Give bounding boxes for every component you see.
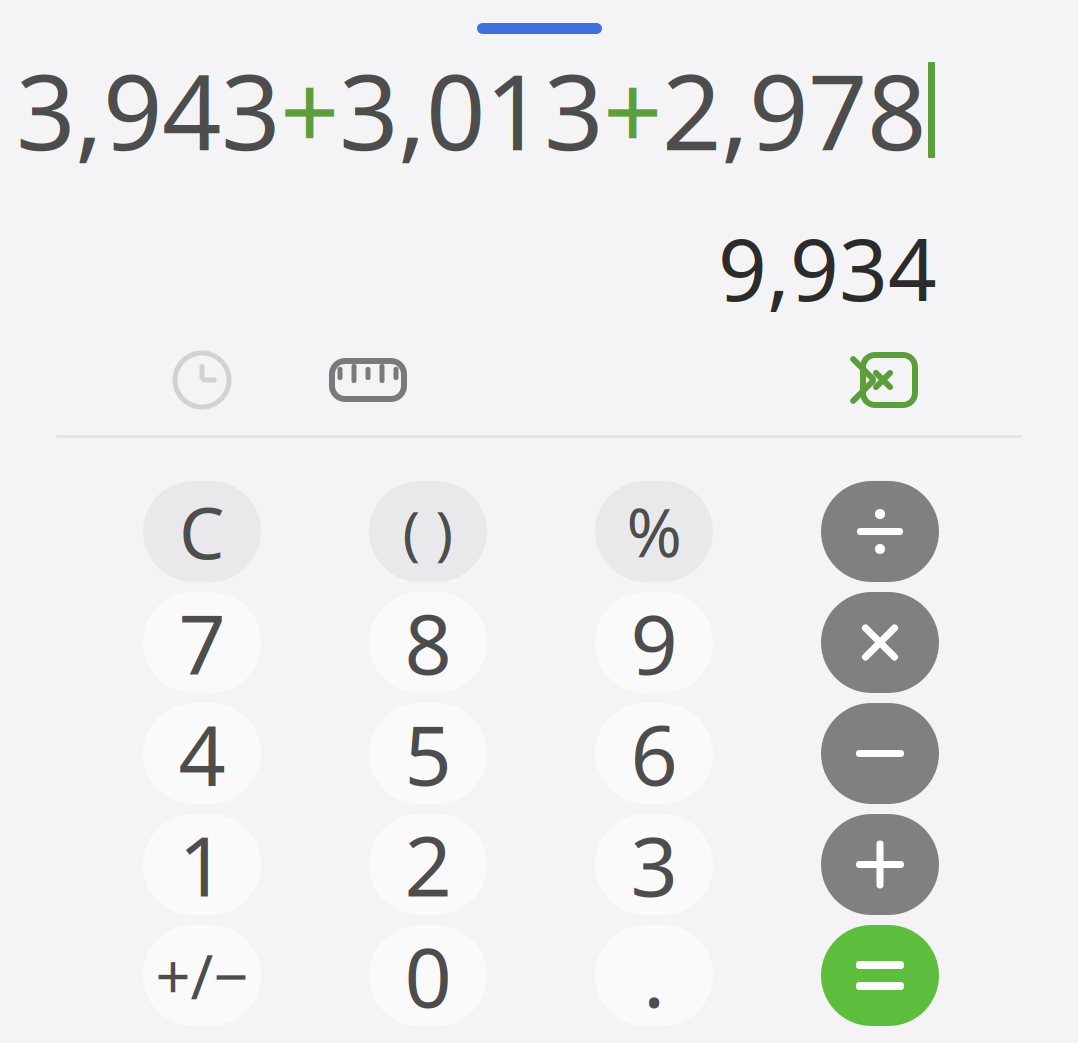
button[interactable]: Equals xyxy=(780,920,980,1031)
button[interactable]: 6 xyxy=(554,698,754,809)
button[interactable]: 3 xyxy=(554,809,754,920)
staticText: 4 xyxy=(178,699,225,808)
staticText: 2,978 xyxy=(662,41,926,179)
staticText: 2 xyxy=(404,810,451,919)
button[interactable]: Minus xyxy=(780,698,980,809)
staticText: 7 xyxy=(178,588,225,697)
staticText: + xyxy=(280,41,339,179)
button[interactable]: C xyxy=(102,476,302,587)
staticText: + xyxy=(603,41,662,179)
staticText: 8 xyxy=(404,588,451,697)
button[interactable]: 9 xyxy=(554,587,754,698)
button[interactable]: Plus xyxy=(780,809,980,920)
staticText: ( ) xyxy=(402,492,453,570)
staticText: 6 xyxy=(630,699,677,808)
staticText: 0 xyxy=(404,921,451,1030)
button[interactable]: ( ) xyxy=(328,476,528,587)
staticText: 3,013 xyxy=(339,41,603,179)
staticText: C xyxy=(179,484,225,579)
staticText: 3 xyxy=(630,810,677,919)
button[interactable]: 5 xyxy=(328,698,528,809)
button[interactable]: Unit converter xyxy=(324,336,412,424)
staticText: 9,934 xyxy=(718,211,937,325)
button[interactable]: 4 xyxy=(102,698,302,809)
button[interactable]: 2 xyxy=(328,809,528,920)
staticText: 5 xyxy=(404,699,451,808)
button[interactable]: 7 xyxy=(102,587,302,698)
button[interactable]: 8 xyxy=(328,587,528,698)
button[interactable]: Multiply xyxy=(780,587,980,698)
button[interactable]: 0 xyxy=(328,920,528,1031)
button[interactable]: Divide xyxy=(780,476,980,587)
button[interactable]: Delete xyxy=(834,336,922,424)
button[interactable]: . xyxy=(554,920,754,1031)
button[interactable]: History xyxy=(158,336,246,424)
button[interactable]: % xyxy=(554,476,754,587)
staticText: +/− xyxy=(155,935,248,1016)
button[interactable]: +/− xyxy=(102,920,302,1031)
staticText: . xyxy=(643,921,665,1030)
staticText: 1 xyxy=(178,810,225,919)
staticText: 3,943 xyxy=(16,41,280,179)
staticText: % xyxy=(626,487,681,576)
button[interactable]: 1 xyxy=(102,809,302,920)
staticText: 9 xyxy=(630,588,677,697)
